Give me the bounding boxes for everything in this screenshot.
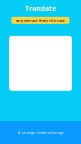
staticText: A strange rendered image [17,130,63,135]
staticText: Translate [25,4,56,13]
staticText: any extract from the text [16,18,65,23]
